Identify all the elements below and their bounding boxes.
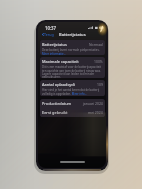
button[interactable]: Terug: [41, 31, 55, 38]
staticText: januari 2024: [83, 101, 103, 106]
button[interactable]: Productiedatum: [40, 99, 105, 108]
staticText: Batterijstatus: [42, 42, 67, 47]
button[interactable]: Aantal oplaadcycli: [40, 80, 105, 96]
staticText: Dit is een maatstaf voor de batterijcapa…: [42, 65, 103, 78]
staticText: 100%: [94, 59, 103, 64]
button[interactable]: Maximale capaciteit: [40, 57, 105, 78]
button[interactable]: Eerst gebruikt: [40, 108, 105, 117]
staticText: Eerst gebruikt: [42, 110, 68, 115]
staticText: Normaal: [89, 42, 103, 47]
staticText: Aantal oplaadcycli: [42, 82, 76, 87]
button[interactable]: Batterijstatus: [40, 40, 105, 55]
staticText: 109: [97, 82, 103, 87]
staticText: Hier vind je het aantal keren dat de bat…: [42, 88, 103, 96]
staticText: Batterijstatus: [59, 32, 86, 37]
staticText: Maximale capaciteit: [42, 59, 79, 64]
staticText: Productiedatum: [42, 101, 72, 106]
staticText: Deze batterij levert normale piekprestat…: [42, 48, 103, 55]
staticText: 10:37: [45, 25, 57, 31]
staticText: Terug: [44, 32, 54, 37]
staticText: mei 2024: [88, 110, 103, 115]
